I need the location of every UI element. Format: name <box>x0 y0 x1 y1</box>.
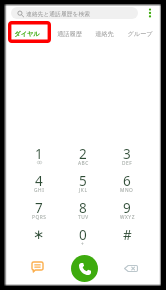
staticText: ダイヤル <box>14 30 40 38</box>
staticText: MNO <box>120 187 134 194</box>
staticText: 3 <box>123 145 131 163</box>
staticText: 8 <box>79 199 87 217</box>
staticText: ABC <box>78 160 89 167</box>
button[interactable]: 連絡先と通話履歴を検索 <box>11 7 138 19</box>
staticText: 2 <box>79 145 87 163</box>
staticText: 4 <box>35 172 43 190</box>
staticText: 5 <box>79 172 87 190</box>
staticText: PQRS <box>32 214 47 221</box>
button[interactable]: 通話履歴 <box>50 24 89 43</box>
staticText: JKL <box>79 187 88 194</box>
button[interactable]: 連絡先 <box>89 24 119 43</box>
staticText: TUV <box>78 214 89 221</box>
staticText: WXYZ <box>120 214 135 221</box>
button[interactable]: 2 <box>61 140 105 167</box>
button[interactable]: グループ <box>119 24 161 43</box>
button[interactable]: 3 <box>105 140 149 167</box>
staticText: DEF <box>122 160 133 167</box>
button[interactable]: ∗ <box>17 221 61 248</box>
button[interactable]: 0 <box>61 221 105 248</box>
button[interactable]: 1 <box>17 140 61 167</box>
staticText: 1 <box>35 145 43 163</box>
staticText: 6 <box>123 172 131 190</box>
button[interactable]: 9 <box>105 194 149 221</box>
staticText: 9 <box>123 199 131 217</box>
button[interactable]: # <box>105 221 149 248</box>
button[interactable]: ダイヤル <box>4 24 50 43</box>
button[interactable]: 7 <box>17 194 61 221</box>
button[interactable]: 8 <box>61 194 105 221</box>
button[interactable]: Backspace <box>121 258 141 278</box>
staticText: 通話履歴 <box>57 30 82 38</box>
staticText: 連絡先と通話履歴を検索 <box>26 10 91 17</box>
staticText: 連絡先 <box>95 30 114 38</box>
button[interactable]: Message <box>28 258 46 276</box>
staticText: 0 <box>79 226 87 244</box>
staticText: + <box>81 241 85 248</box>
button[interactable]: 4 <box>17 167 61 194</box>
staticText: GHI <box>34 187 45 194</box>
button[interactable]: Call <box>71 255 98 282</box>
staticText: グループ <box>127 30 153 38</box>
button[interactable]: 5 <box>61 167 105 194</box>
staticText: 7 <box>35 199 43 217</box>
button[interactable]: More options <box>143 6 157 20</box>
staticText: ∗ <box>33 226 45 242</box>
staticText: # <box>123 226 132 244</box>
button[interactable]: 6 <box>105 167 149 194</box>
